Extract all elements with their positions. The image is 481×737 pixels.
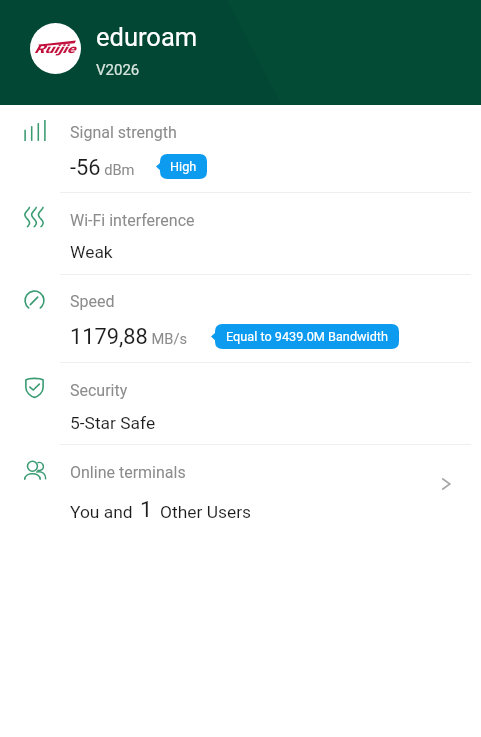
staticText: 1 xyxy=(140,497,153,523)
button[interactable]: Wi-Fi interference xyxy=(0,193,481,275)
other: Online terminals xyxy=(440,478,452,490)
staticText: Ruijie xyxy=(35,42,76,55)
staticText: 1179,88 MB/s xyxy=(70,324,188,350)
staticText: Speed xyxy=(70,292,115,311)
staticText: Weak xyxy=(70,242,113,262)
staticText: Other Users xyxy=(160,502,252,522)
button[interactable]: Signal strength xyxy=(0,105,481,193)
staticText: Signal strength xyxy=(70,123,177,142)
staticText: V2026 xyxy=(96,61,140,79)
staticText: eduroam xyxy=(96,22,198,52)
staticText: Online terminals xyxy=(70,463,186,482)
staticText: Wi-Fi interference xyxy=(70,211,195,230)
staticText: High xyxy=(170,159,197,174)
staticText: You and xyxy=(70,502,133,522)
staticText: Security xyxy=(70,381,128,400)
staticText: 5-Star Safe xyxy=(70,413,156,433)
staticText: -56 dBm xyxy=(70,155,135,181)
button[interactable]: Online terminals xyxy=(0,445,481,534)
button[interactable]: Speed xyxy=(0,275,481,363)
staticText: Equal to 9439.0M Bandwidth xyxy=(226,329,388,344)
button[interactable]: Security xyxy=(0,363,481,445)
